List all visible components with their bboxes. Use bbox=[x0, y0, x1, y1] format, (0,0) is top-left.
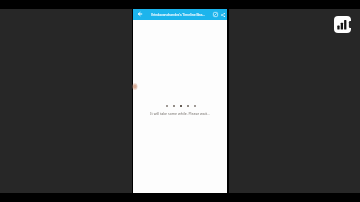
staticText: It will take some while. Please wait... bbox=[150, 111, 210, 116]
button[interactable]: Share bbox=[217, 9, 229, 20]
button[interactable]: Photos bbox=[209, 9, 221, 20]
other: Screen recorder logo bbox=[334, 16, 351, 33]
staticText: Vrindavanchandra's Timeline Bea... bbox=[151, 12, 205, 16]
button[interactable]: Navigate up bbox=[134, 8, 146, 19]
